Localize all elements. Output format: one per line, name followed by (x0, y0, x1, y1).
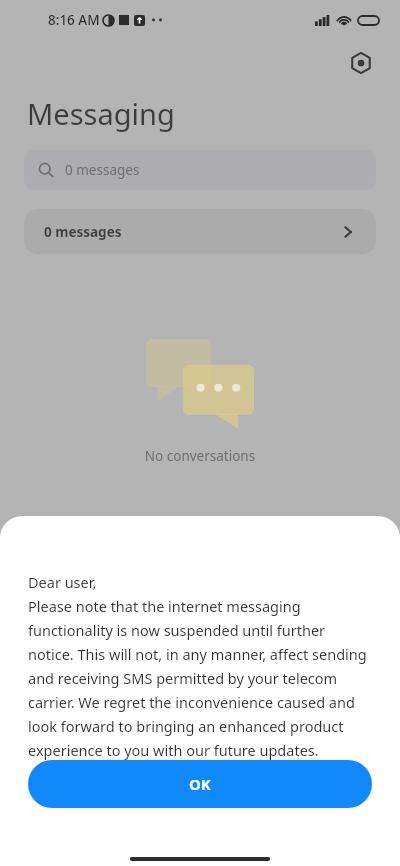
staticText: OK (189, 774, 211, 794)
button[interactable]: 0 messages (24, 150, 376, 190)
staticText: 0 messages (44, 223, 122, 241)
staticText: 0 messages (65, 161, 140, 179)
button[interactable]: Settings (344, 46, 378, 80)
staticText: No conversations (0, 447, 400, 465)
staticText: Dear user, Please note that the internet… (28, 572, 372, 760)
staticText: Messaging (27, 94, 175, 133)
button[interactable]: OK (28, 760, 372, 808)
button[interactable]: 0 messages (24, 209, 376, 254)
staticText: 8:16 AM (48, 11, 100, 29)
